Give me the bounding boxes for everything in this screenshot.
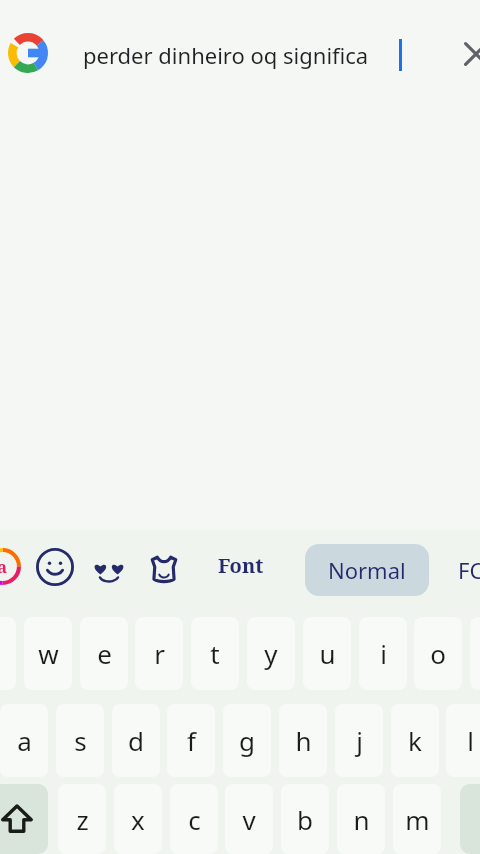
staticText: l: [467, 723, 474, 758]
staticText: u: [319, 636, 336, 671]
button[interactable]: t: [191, 617, 239, 690]
button[interactable]: s: [56, 704, 104, 777]
button[interactable]: u: [303, 617, 351, 690]
button[interactable]: f: [167, 704, 215, 777]
staticText: m: [405, 802, 430, 837]
button[interactable]: y: [247, 617, 295, 690]
staticText: y: [264, 636, 278, 671]
button[interactable]: b: [281, 784, 329, 854]
button[interactable]: Clear search: [456, 34, 480, 74]
staticText: s: [74, 723, 87, 758]
button[interactable]: d: [112, 704, 160, 777]
staticText: r: [154, 636, 165, 671]
staticText: FC: [458, 555, 480, 585]
button[interactable]: Emoji: [36, 548, 74, 586]
staticText: x: [131, 802, 145, 837]
button[interactable]: Backspace: [460, 784, 480, 854]
button[interactable]: l: [446, 704, 480, 777]
staticText: t: [210, 636, 220, 671]
button[interactable]: r: [135, 617, 183, 690]
staticText: k: [408, 723, 422, 758]
button[interactable]: m: [393, 784, 441, 854]
button[interactable]: n: [337, 784, 385, 854]
staticText: z: [76, 802, 89, 837]
staticText: i: [380, 636, 387, 671]
staticText: e: [97, 636, 112, 671]
staticText: o: [430, 636, 446, 671]
staticText: h: [295, 723, 312, 758]
button[interactable]: Font: [218, 544, 264, 586]
button[interactable]: x: [114, 784, 162, 854]
staticText: f: [187, 723, 196, 758]
button[interactable]: Stickers: [88, 550, 130, 592]
button[interactable]: k: [391, 704, 439, 777]
staticText: d: [128, 723, 144, 758]
button[interactable]: FC: [458, 544, 480, 596]
button[interactable]: c: [170, 784, 218, 854]
staticText: v: [242, 802, 256, 837]
button[interactable]: w: [24, 617, 72, 690]
button[interactable]: Google: [0, 0, 480, 100]
staticText: Font: [218, 552, 264, 579]
button[interactable]: Shift: [0, 784, 48, 854]
staticText: a: [0, 555, 8, 578]
button[interactable]: Normal: [305, 544, 429, 596]
button[interactable]: g: [223, 704, 271, 777]
staticText: g: [239, 723, 255, 758]
button[interactable]: Avatar stickers: [143, 548, 185, 590]
staticText: Normal: [328, 555, 406, 585]
staticText: n: [353, 802, 370, 837]
button[interactable]: e: [80, 617, 128, 690]
staticText: perder dinheiro oq significa: [83, 40, 369, 70]
button[interactable]: h: [279, 704, 327, 777]
button[interactable]: j: [335, 704, 383, 777]
staticText: j: [356, 723, 363, 758]
button[interactable]: Google: [8, 33, 48, 73]
button[interactable]: Assistant: [0, 548, 21, 585]
staticText: b: [297, 802, 313, 837]
staticText: c: [188, 802, 201, 837]
button[interactable]: o: [414, 617, 462, 690]
staticText: a: [17, 723, 32, 758]
button[interactable]: a: [0, 704, 48, 777]
button[interactable]: v: [225, 784, 273, 854]
button[interactable]: i: [359, 617, 407, 690]
staticText: w: [38, 636, 59, 671]
button[interactable]: z: [58, 784, 106, 854]
